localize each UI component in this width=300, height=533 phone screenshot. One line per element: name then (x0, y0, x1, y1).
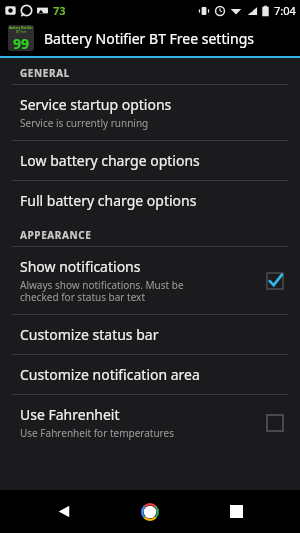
button[interactable]: Use Fahrenheit (0, 395, 300, 450)
staticText: Full battery charge options (20, 191, 197, 210)
staticText: Service startup options (20, 95, 172, 114)
staticText: Battery Notifier (9, 26, 33, 30)
staticText: Battery Notifier BT Free settings (44, 29, 255, 48)
button[interactable]: Customize notification area (0, 355, 300, 394)
button[interactable]: Service startup options (0, 85, 300, 140)
staticText: Customize status bar (20, 325, 159, 344)
staticText: 73 (53, 3, 66, 18)
button[interactable]: Back (42, 490, 86, 533)
staticText: BT Free (16, 30, 27, 34)
button[interactable]: Full battery charge options (0, 181, 300, 220)
staticText: APPEARANCE (20, 228, 92, 242)
button[interactable]: App icon (8, 25, 34, 51)
staticText: Use Fahrenheit (20, 405, 120, 424)
button[interactable]: Home (128, 490, 172, 533)
button[interactable]: Show notifications (0, 247, 300, 314)
button[interactable]: Show notifications checkbox (264, 270, 286, 292)
staticText: Service is currently running (20, 116, 149, 130)
button[interactable]: Use Fahrenheit checkbox (264, 412, 286, 434)
button[interactable]: Low battery charge options (0, 141, 300, 180)
staticText: Low battery charge options (20, 151, 200, 170)
staticText: 7:04 (274, 3, 296, 18)
staticText: Customize notification area (20, 365, 200, 384)
button[interactable]: Customize status bar (0, 315, 300, 354)
button[interactable]: Recent apps (214, 490, 258, 533)
staticText: Always show notifications. Must be check… (20, 278, 184, 304)
staticText: Show notifications (20, 257, 141, 276)
staticText: 99 (13, 34, 30, 51)
staticText: Use Fahrenheit for temperatures (20, 426, 174, 440)
staticText: GENERAL (20, 66, 70, 80)
